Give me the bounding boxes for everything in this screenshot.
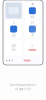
staticText: bb <box>30 15 34 19</box>
staticText: sit amet elit <box>15 87 31 91</box>
staticText: gg <box>12 43 16 47</box>
staticText: Lorem ipsum dolor <box>10 83 36 87</box>
staticText: hh <box>12 48 16 52</box>
button[interactable]: gg <box>5 39 22 55</box>
button[interactable]: ee <box>24 20 41 37</box>
staticText: aa <box>31 2 33 6</box>
button[interactable] <box>5 2 22 18</box>
staticText: ii <box>31 44 33 48</box>
button[interactable]: cc <box>5 20 22 37</box>
staticText: dd <box>12 34 16 37</box>
button[interactable]: aa <box>24 2 41 18</box>
staticText: cc <box>13 21 15 24</box>
staticText: ff <box>31 34 33 37</box>
staticText: ee <box>30 21 34 24</box>
button[interactable]: ii <box>24 39 41 55</box>
